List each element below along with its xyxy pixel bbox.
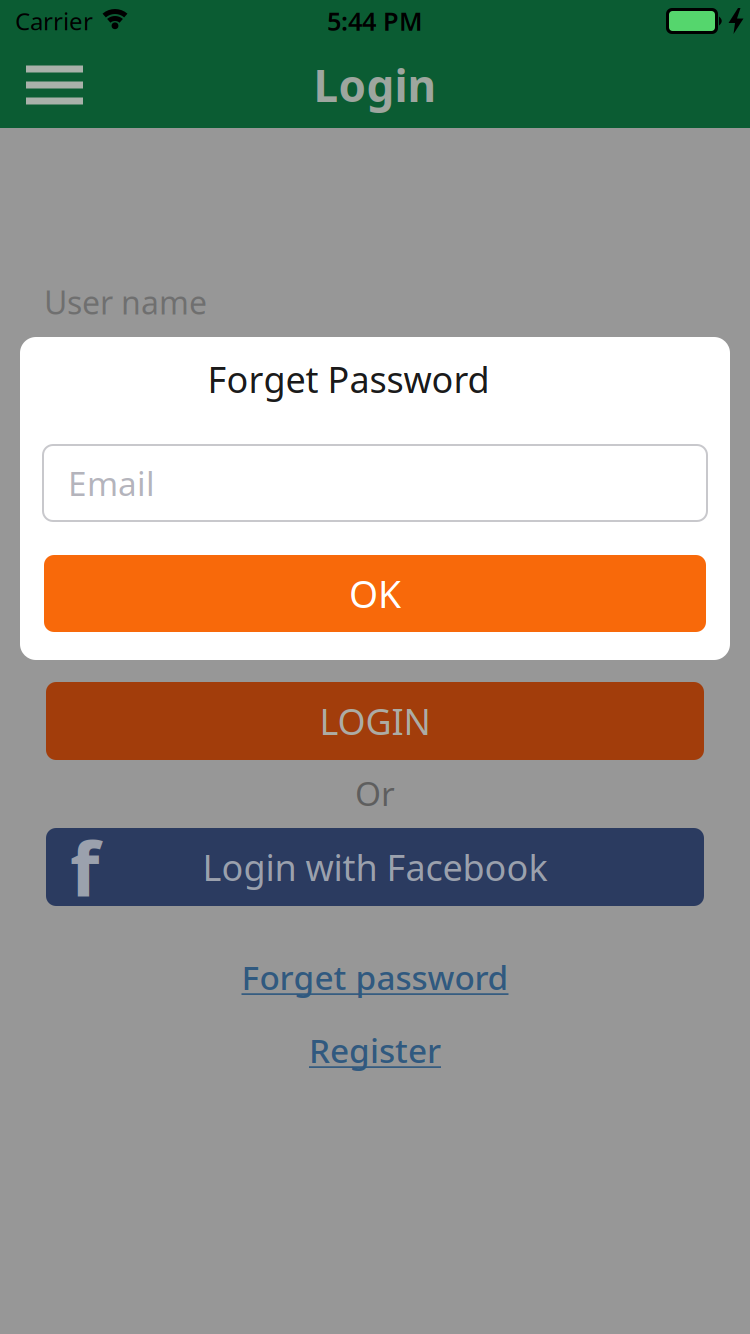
button[interactable]: Forget password (241, 955, 508, 999)
staticText: Login (313, 56, 436, 114)
staticText: Or (355, 771, 395, 815)
button[interactable]: LOGIN (46, 682, 704, 760)
staticText: Forget Password (207, 355, 489, 403)
staticText: Register (309, 1028, 441, 1072)
staticText: OK (349, 569, 401, 618)
staticText: Forget password (241, 955, 508, 999)
button[interactable]: f (46, 828, 704, 906)
staticText: f (70, 816, 99, 917)
staticText: Carrier (15, 5, 93, 37)
staticText: Email (68, 461, 155, 505)
button[interactable]: OK (44, 555, 706, 632)
button[interactable]: Email (43, 445, 707, 521)
staticText: User name (44, 281, 207, 323)
staticText: 5:44 PM (327, 4, 423, 38)
staticText: LOGIN (319, 697, 430, 745)
button[interactable]: Register (309, 1028, 441, 1072)
staticText: Login with Facebook (202, 843, 547, 891)
button[interactable]: Menu (0, 53, 83, 116)
